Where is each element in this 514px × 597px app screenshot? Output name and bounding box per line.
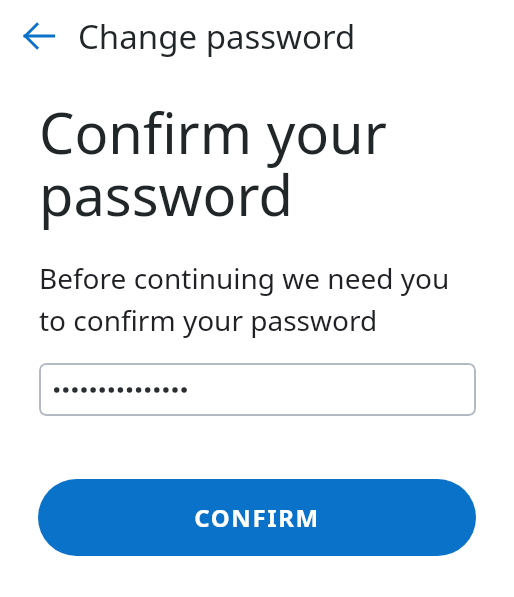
staticText: CONFIRM — [194, 501, 320, 534]
button[interactable]: Password field — [39, 363, 476, 416]
button[interactable]: Back — [10, 7, 68, 65]
staticText: Before continuing we need you to confirm… — [39, 259, 478, 339]
staticText: Change password — [78, 14, 356, 59]
staticText: Confirm your password — [39, 94, 444, 233]
button[interactable]: CONFIRM — [38, 479, 476, 556]
